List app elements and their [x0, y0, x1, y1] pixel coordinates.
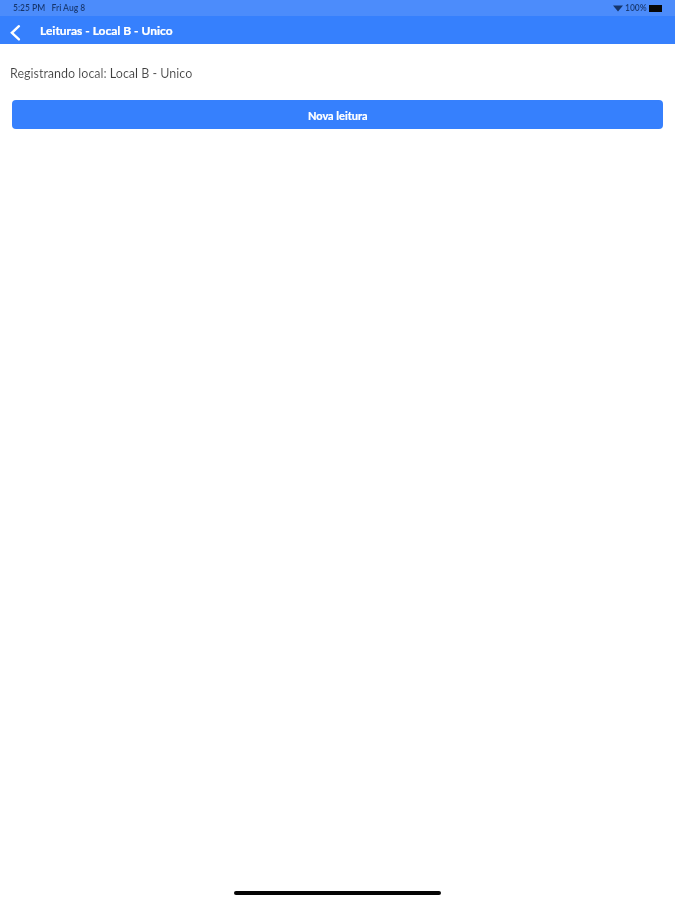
staticText: 5:25 PM Fri Aug 8: [13, 3, 86, 13]
staticText: Nova leitura: [308, 109, 368, 122]
staticText: 100%: [625, 3, 647, 13]
staticText: Leituras - Local B - Unico: [40, 23, 173, 37]
button[interactable]: Back: [0, 16, 30, 44]
button[interactable]: Nova leitura: [12, 100, 663, 129]
staticText: Registrando local: Local B - Unico: [10, 66, 193, 81]
